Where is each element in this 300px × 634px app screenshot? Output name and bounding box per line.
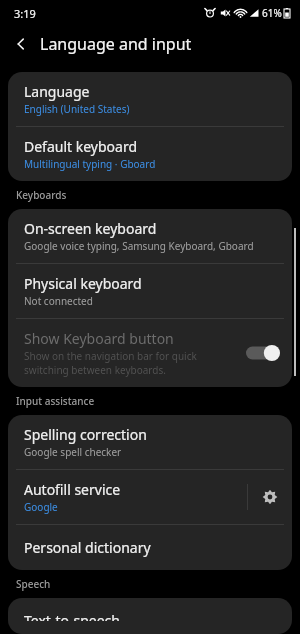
staticText: Keyboards [16,188,67,202]
staticText: On-screen keyboard [24,219,157,238]
staticText: Personal dictionary [24,538,151,557]
button[interactable]: On-screen keyboard [8,209,292,263]
button[interactable]: Spelling correction [8,415,292,469]
button[interactable]: Autofill service [8,470,247,524]
staticText: Google [24,500,58,514]
staticText: Autofill service [24,480,121,499]
staticText: Text-to-speech [24,611,120,621]
button[interactable]: Default keyboard [8,127,292,181]
staticText: 61% [262,6,282,20]
staticText: Physical keyboard [24,274,142,293]
staticText: Spelling correction [24,425,147,444]
button[interactable]: Language [8,72,292,126]
staticText: Language [24,82,90,101]
staticText: Show on the navigation bar for quick swi… [24,349,238,377]
staticText: Input assistance [16,394,95,408]
staticText: Google voice typing, Samsung Keyboard, G… [24,239,254,253]
staticText: Language and input [40,33,192,55]
button[interactable]: Back [6,29,36,59]
button[interactable]: Autofill settings [248,475,292,519]
staticText: Show Keyboard button [24,329,174,348]
button[interactable]: Show Keyboard button toggle [246,344,280,362]
staticText: Speech [16,577,51,591]
button[interactable]: Text-to-speech [8,598,292,634]
staticText: 3:19 [14,6,36,21]
button[interactable]: Physical keyboard [8,264,292,318]
staticText: Google spell checker [24,445,122,459]
staticText: Not connected [24,294,93,308]
button[interactable]: Show Keyboard button [8,319,292,387]
staticText: Multilingual typing · Gboard [24,157,156,171]
staticText: English (United States) [24,102,130,116]
staticText: Default keyboard [24,137,138,156]
button[interactable]: Personal dictionary [8,525,292,570]
